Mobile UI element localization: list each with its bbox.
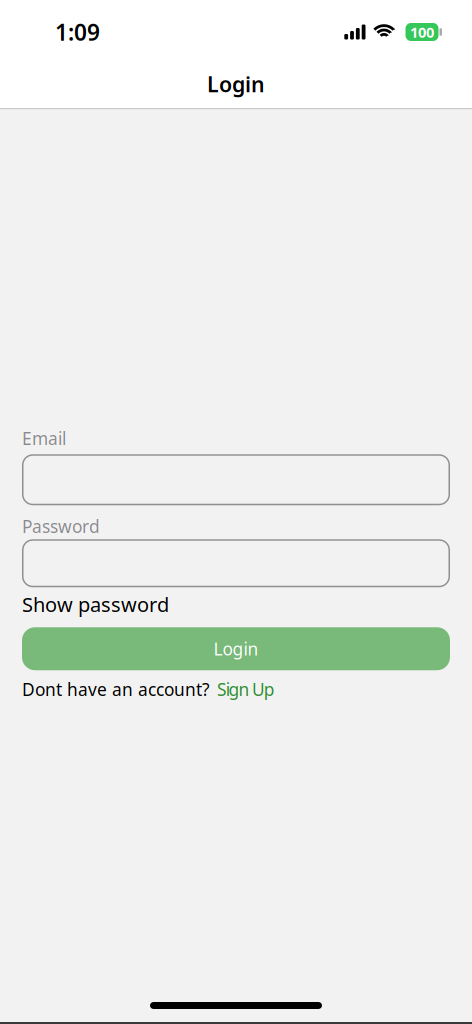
button[interactable] bbox=[22, 539, 450, 587]
button[interactable] bbox=[22, 454, 450, 505]
staticText: Dont have an account? bbox=[22, 678, 210, 701]
staticText: Email bbox=[22, 427, 66, 450]
button[interactable]: Show password bbox=[22, 592, 169, 616]
staticText: Login bbox=[213, 637, 258, 660]
button[interactable]: Login bbox=[22, 627, 450, 670]
button[interactable]: Sign Up bbox=[217, 678, 275, 701]
staticText: Show password bbox=[22, 591, 169, 618]
staticText: Sign Up bbox=[217, 678, 275, 701]
staticText: 1:09 bbox=[55, 17, 100, 47]
staticText: Login bbox=[207, 70, 265, 98]
staticText: Password bbox=[22, 515, 100, 538]
staticText: 100 bbox=[410, 22, 434, 42]
